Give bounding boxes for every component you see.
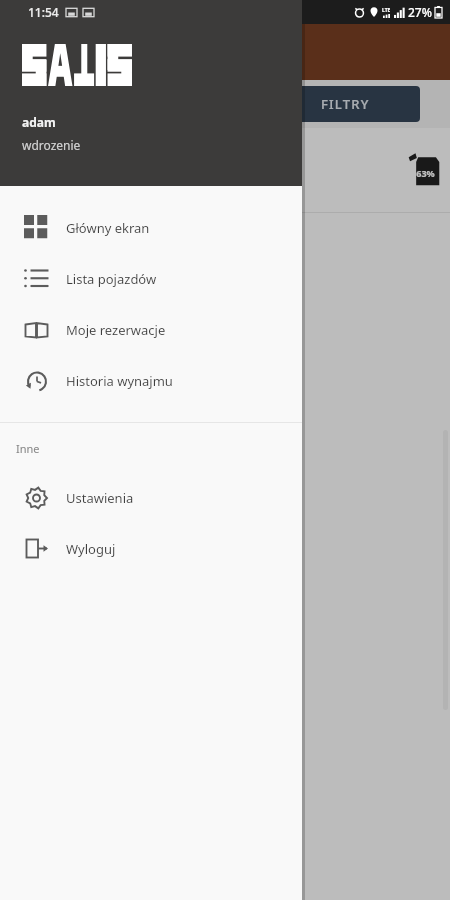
- button[interactable]: FILTRY: [270, 86, 420, 122]
- staticText: wdrozenie: [22, 137, 81, 153]
- button[interactable]: Historia wynajmu: [0, 355, 302, 406]
- staticText: Wyloguj: [66, 540, 116, 558]
- button[interactable]: Wyloguj: [0, 523, 302, 574]
- staticText: Historia wynajmu: [66, 372, 173, 390]
- staticText: adam: [22, 114, 56, 130]
- button[interactable]: Lista pojazdów: [0, 253, 302, 304]
- button[interactable]: Moje rezerwacje: [0, 304, 302, 355]
- button[interactable]: Główny ekran: [0, 202, 302, 253]
- button[interactable]: [0, 0, 450, 900]
- staticText: Główny ekran: [66, 219, 150, 237]
- staticText: 63%: [416, 167, 435, 179]
- button[interactable]: Ustawienia: [0, 472, 302, 523]
- staticText: 11:54: [28, 4, 59, 20]
- staticText: Moje rezerwacje: [66, 321, 166, 339]
- staticText: LTE: [382, 7, 391, 14]
- staticText: Inne: [16, 441, 40, 456]
- staticText: 27%: [408, 4, 432, 20]
- staticText: FILTRY: [321, 95, 370, 113]
- staticText: Ustawienia: [66, 489, 134, 507]
- staticText: Lista pojazdów: [66, 270, 157, 288]
